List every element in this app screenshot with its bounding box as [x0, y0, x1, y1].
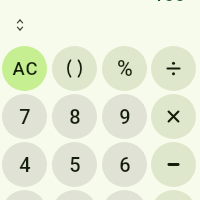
button[interactable]: AC — [2, 46, 47, 91]
staticText: % — [117, 56, 133, 81]
button[interactable]: 3 — [102, 190, 147, 200]
button[interactable]: Multiply — [151, 94, 196, 139]
button[interactable]: Add — [151, 190, 196, 200]
button[interactable]: Divide — [151, 46, 196, 91]
button[interactable]: Subtract — [151, 142, 196, 187]
staticText: 5 — [69, 153, 81, 176]
button[interactable]: 7 — [2, 94, 47, 139]
staticText: 9 — [119, 105, 131, 128]
staticText: 7 — [19, 105, 31, 128]
staticText: 6 — [119, 153, 131, 176]
button[interactable]: % — [102, 46, 147, 91]
staticText: AC — [12, 58, 39, 80]
button[interactable]: Parentheses — [52, 46, 97, 91]
button[interactable]: Expand display — [9, 14, 31, 36]
button[interactable]: 2 — [52, 190, 97, 200]
button[interactable]: 6 — [102, 142, 147, 187]
button[interactable]: 8 — [52, 94, 97, 139]
staticText: 4 — [19, 153, 31, 176]
staticText: 8 — [69, 105, 81, 128]
button[interactable]: 9 — [102, 94, 147, 139]
button[interactable]: 1 — [2, 190, 47, 200]
button[interactable]: 4 — [2, 142, 47, 187]
button[interactable]: 5 — [52, 142, 97, 187]
staticText: 100 — [153, 0, 186, 5]
